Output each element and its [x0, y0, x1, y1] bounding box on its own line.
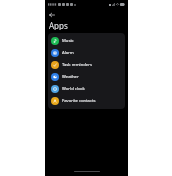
staticText: World clock — [62, 86, 85, 92]
button[interactable]: Weather — [48, 71, 125, 83]
button[interactable]: Back — [47, 10, 57, 20]
staticText: Weather — [62, 74, 79, 80]
button[interactable]: Task reminders — [48, 59, 125, 71]
button[interactable]: Alarm — [48, 47, 125, 59]
staticText: Music — [62, 38, 74, 44]
staticText: Favorite contacts — [62, 98, 96, 104]
button[interactable]: World clock — [48, 83, 125, 95]
button[interactable]: Music — [48, 35, 125, 47]
staticText: Apps — [49, 20, 68, 30]
staticText: Task reminders — [62, 62, 92, 68]
staticText: Alarm — [62, 50, 74, 56]
button[interactable]: Favorite contacts — [48, 95, 125, 107]
